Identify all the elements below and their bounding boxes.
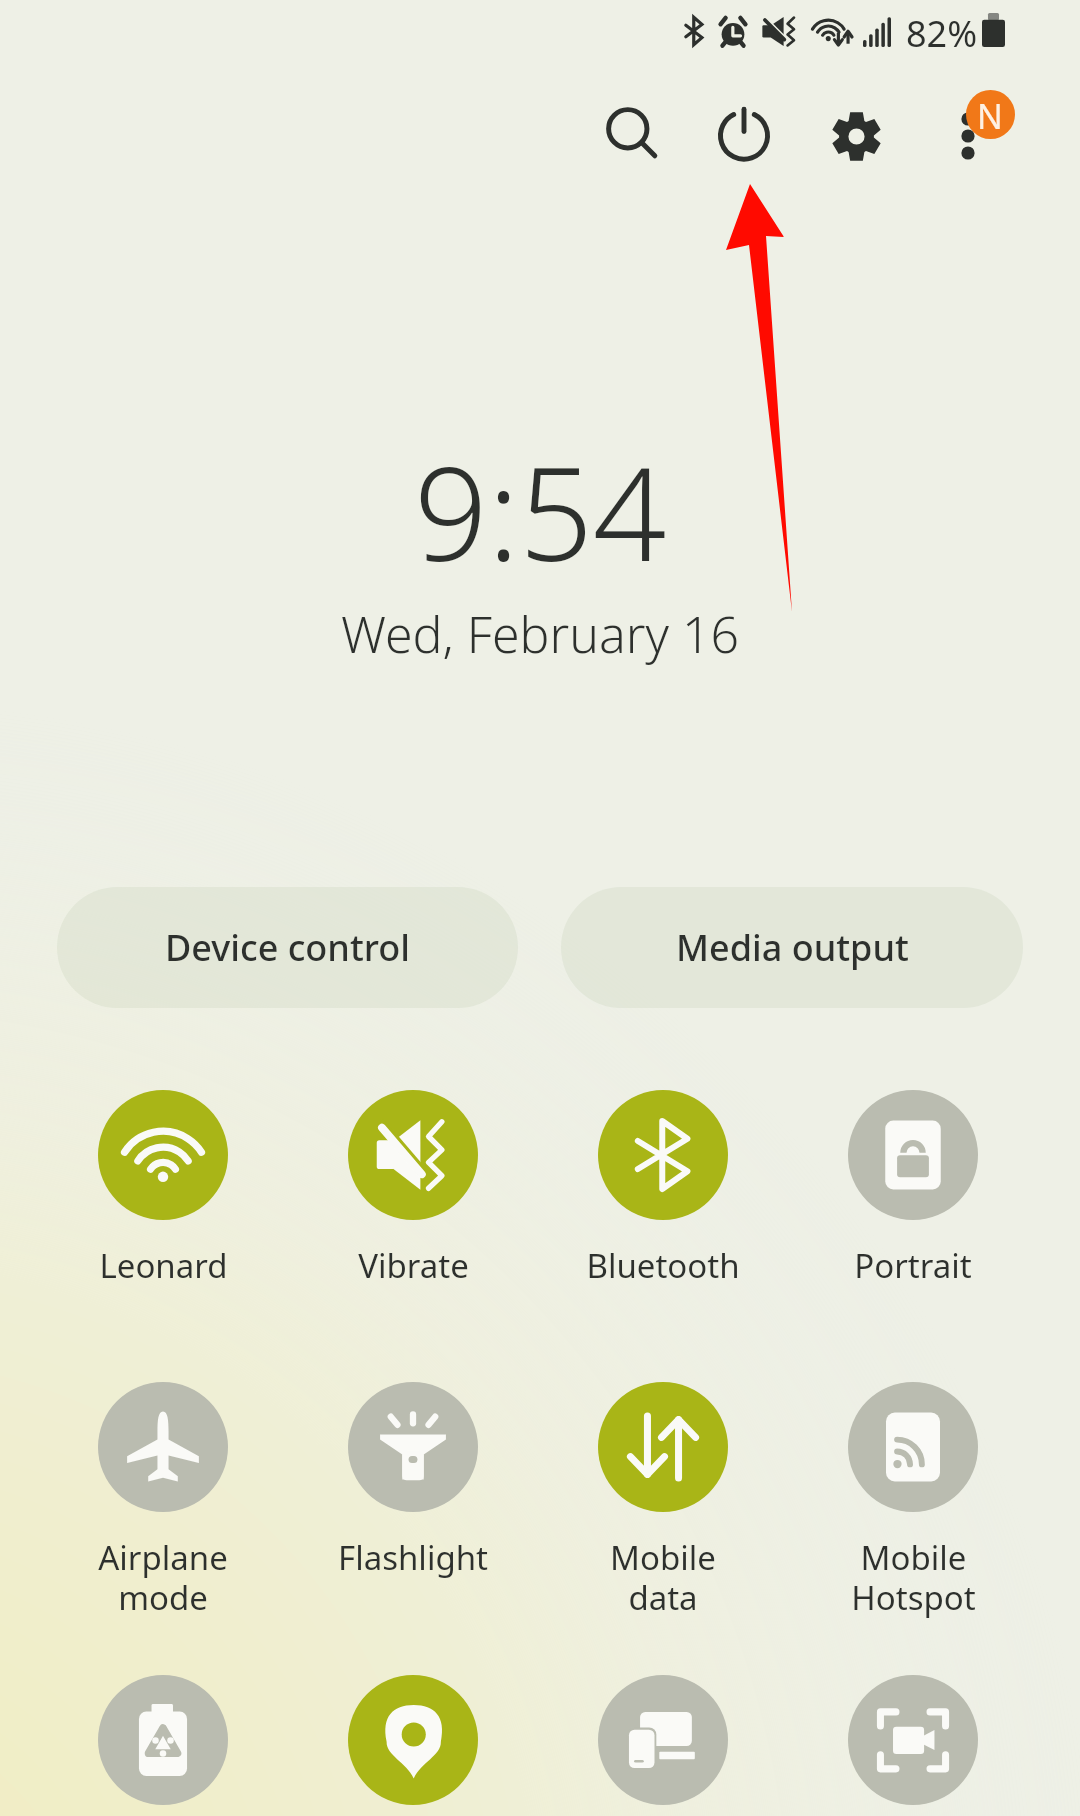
button[interactable]: Mobile Hotspot xyxy=(788,1382,1038,1620)
staticText: Vibrate xyxy=(358,1243,469,1288)
staticText: Bluetooth xyxy=(586,1243,740,1288)
button[interactable]: Vibrate xyxy=(288,1090,538,1288)
button[interactable]: Screen recorder xyxy=(788,1675,1038,1805)
button[interactable]: Airplane mode xyxy=(38,1382,288,1620)
button[interactable]: Bluetooth xyxy=(538,1090,788,1288)
button[interactable]: More options xyxy=(922,87,1014,179)
button[interactable]: Mobile data xyxy=(538,1382,788,1620)
button[interactable]: Power off xyxy=(698,88,790,180)
staticText: Wed, February 16 xyxy=(341,600,740,668)
staticText: 9:54 xyxy=(414,423,667,599)
button[interactable]: Device control xyxy=(57,887,518,1008)
button[interactable]: Power saving xyxy=(38,1675,288,1805)
button[interactable]: Search xyxy=(588,89,680,181)
button[interactable]: Settings xyxy=(810,90,902,182)
staticText: 82% xyxy=(906,9,978,58)
staticText: Leonard xyxy=(99,1243,228,1288)
button[interactable]: Portrait xyxy=(788,1090,1038,1288)
button[interactable]: Wi-Fi xyxy=(38,1090,288,1288)
staticText: Device control xyxy=(165,923,410,972)
staticText: Mobile data xyxy=(610,1535,716,1620)
staticText: Flashlight xyxy=(338,1535,488,1580)
button[interactable]: Location xyxy=(288,1675,538,1805)
button[interactable]: Media output xyxy=(561,887,1023,1008)
button[interactable]: Flashlight xyxy=(288,1382,538,1580)
staticText: Media output xyxy=(676,923,909,972)
staticText: Portrait xyxy=(854,1243,972,1288)
staticText: N xyxy=(977,93,1003,139)
staticText: Airplane mode xyxy=(98,1535,228,1620)
staticText: Mobile Hotspot xyxy=(851,1535,976,1620)
button[interactable]: Smart View xyxy=(538,1675,788,1805)
